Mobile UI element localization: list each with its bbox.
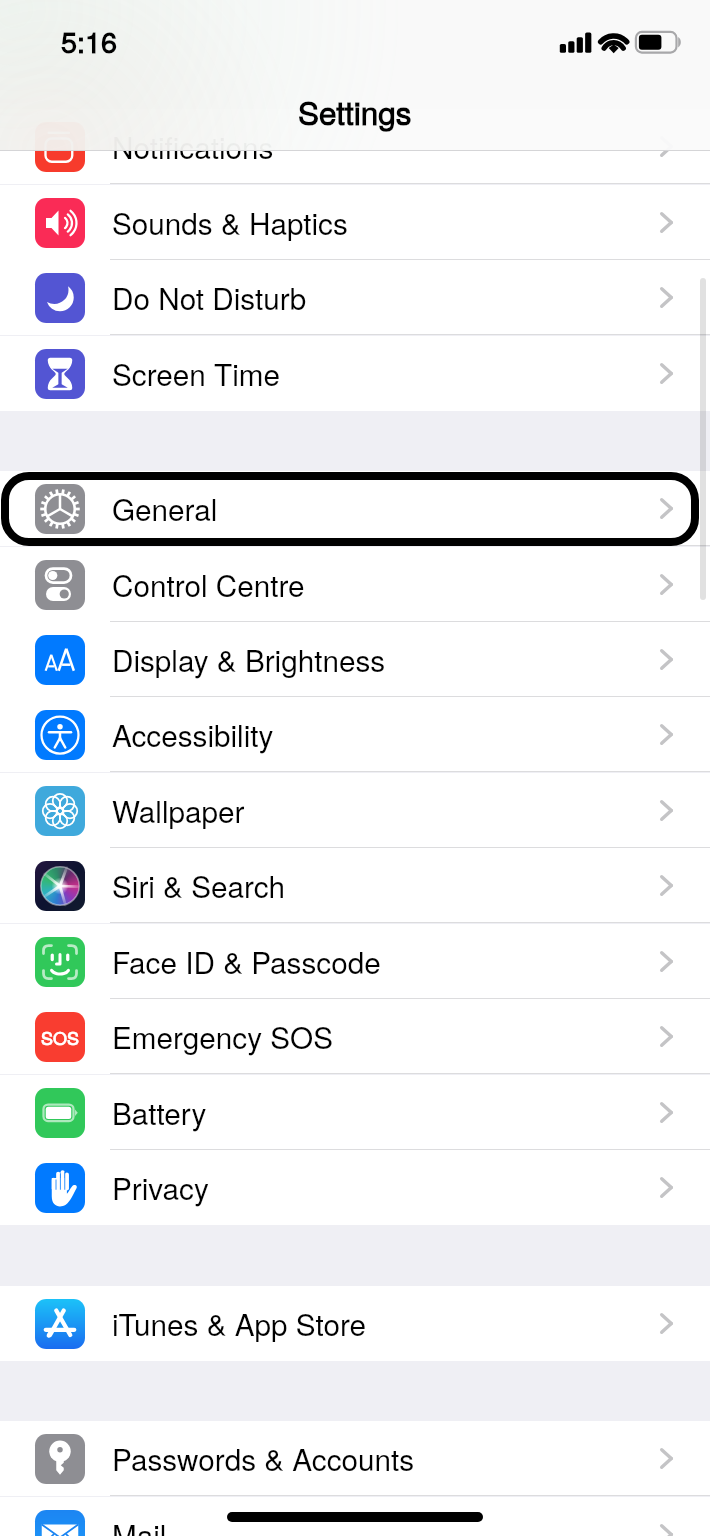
button[interactable]: Control Centre	[0, 547, 710, 622]
staticText: Notifications	[112, 125, 274, 168]
button[interactable]: Face ID & Passcode	[0, 924, 710, 999]
staticText: Screen Time	[112, 352, 280, 395]
button[interactable]: Battery	[0, 1075, 710, 1150]
staticText: Settings	[298, 89, 412, 134]
button[interactable]: iTunes & App Store	[0, 1286, 710, 1361]
staticText: Sounds & Haptics	[112, 201, 348, 244]
staticText: iTunes & App Store	[112, 1302, 367, 1345]
button[interactable]: General	[0, 471, 710, 546]
staticText: Battery	[112, 1091, 207, 1134]
button[interactable]: Siri & Search	[0, 848, 710, 923]
button[interactable]: Screen Time	[0, 336, 710, 411]
other: Cellular signal, Wi-Fi and battery statu…	[555, 28, 690, 58]
staticText: Emergency SOS	[112, 1015, 333, 1058]
button[interactable]: Mail	[0, 1497, 710, 1536]
staticText: Accessibility	[112, 713, 274, 756]
staticText: Wallpaper	[112, 789, 245, 832]
button[interactable]: Accessibility	[0, 697, 710, 772]
staticText: Privacy	[112, 1166, 209, 1209]
staticText: 5:16	[61, 20, 118, 61]
button[interactable]: Passwords & Accounts	[0, 1421, 710, 1496]
button[interactable]: Do Not Disturb	[0, 260, 710, 335]
button[interactable]: SOS	[0, 999, 710, 1074]
staticText: Control Centre	[112, 563, 305, 606]
button[interactable]: Sounds & Haptics	[0, 185, 710, 260]
staticText: Do Not Disturb	[112, 276, 307, 319]
staticText: Passwords & Accounts	[112, 1437, 415, 1480]
staticText: General	[112, 487, 218, 530]
staticText: Siri & Search	[112, 864, 286, 907]
button[interactable]: Display & Brightness	[0, 622, 710, 697]
button[interactable]: Privacy	[0, 1150, 710, 1225]
staticText: Mail	[112, 1513, 167, 1536]
button[interactable]: Wallpaper	[0, 773, 710, 848]
staticText: SOS	[41, 1024, 80, 1050]
staticText: Face ID & Passcode	[112, 940, 381, 983]
button[interactable]: Notifications	[0, 109, 710, 184]
staticText: Display & Brightness	[112, 638, 386, 681]
